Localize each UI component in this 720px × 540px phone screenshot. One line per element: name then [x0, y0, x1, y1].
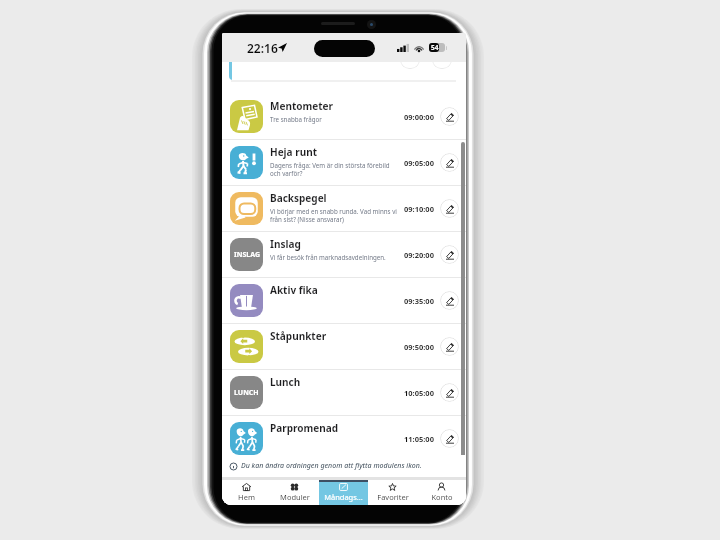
- staticText: Hem: [238, 492, 255, 502]
- button[interactable]: Backspegel: [222, 186, 466, 231]
- staticText: 22:16: [247, 40, 278, 56]
- button[interactable]: Redigera: [440, 153, 459, 172]
- button[interactable]: Redigera: [440, 383, 459, 402]
- staticText: Parpromenad: [270, 421, 339, 435]
- staticText: Lunch: [270, 375, 301, 389]
- staticText: 09:20:00: [404, 250, 434, 260]
- staticText: Tre snabba frågor: [270, 115, 322, 123]
- staticText: Inslag: [270, 237, 301, 251]
- staticText: Moduler: [280, 492, 310, 502]
- button[interactable]: Redigera: [440, 199, 459, 218]
- staticText: Du kan ändra ordningen genom att flytta …: [241, 461, 422, 471]
- button[interactable]: Måndags...: [319, 480, 368, 505]
- staticText: Backspegel: [270, 191, 327, 205]
- staticText: INSLAG: [234, 250, 260, 260]
- button[interactable]: Hem: [222, 480, 270, 505]
- button[interactable]: Favoriter: [368, 480, 417, 505]
- staticText: Heja runt: [270, 145, 317, 159]
- staticText: 11:05:00: [404, 434, 434, 444]
- button[interactable]: Redigera: [440, 337, 459, 356]
- staticText: 10:05:00: [404, 388, 434, 398]
- staticText: 54: [431, 43, 439, 52]
- button[interactable]: Parpromenad: [222, 416, 466, 461]
- staticText: Ståpunkter: [270, 329, 327, 343]
- staticText: Favoriter: [377, 492, 409, 502]
- staticText: 09:35:00: [404, 296, 434, 306]
- staticText: Aktiv fika: [270, 283, 318, 297]
- staticText: LUNCH: [234, 388, 259, 398]
- button[interactable]: Moduler: [270, 480, 319, 505]
- staticText: Vi får besök från marknadsavdelningen.: [270, 253, 386, 261]
- staticText: Vi börjar med en snabb runda. Vad minns …: [270, 207, 401, 223]
- staticText: 09:50:00: [404, 342, 434, 352]
- button[interactable]: Redigera: [440, 245, 459, 264]
- button[interactable]: LUNCH: [222, 370, 466, 415]
- staticText: Dagens fråga: Vem är din största förebil…: [270, 161, 401, 177]
- staticText: Måndags...: [324, 492, 363, 502]
- button[interactable]: Konto: [417, 480, 466, 505]
- staticText: 09:00:00: [404, 112, 434, 122]
- button[interactable]: Redigera: [440, 429, 459, 448]
- staticText: Mentometer: [270, 99, 333, 113]
- button[interactable]: Heja runt: [222, 140, 466, 185]
- staticText: 09:10:00: [404, 204, 434, 214]
- button[interactable]: Mentometer: [222, 94, 466, 139]
- button[interactable]: INSLAG: [222, 232, 466, 277]
- staticText: Konto: [431, 492, 453, 502]
- staticText: 09:05:00: [404, 158, 434, 168]
- button[interactable]: Aktiv fika: [222, 278, 466, 323]
- button[interactable]: Ståpunkter: [222, 324, 466, 369]
- button[interactable]: Redigera: [440, 107, 459, 126]
- button[interactable]: Redigera: [440, 291, 459, 310]
